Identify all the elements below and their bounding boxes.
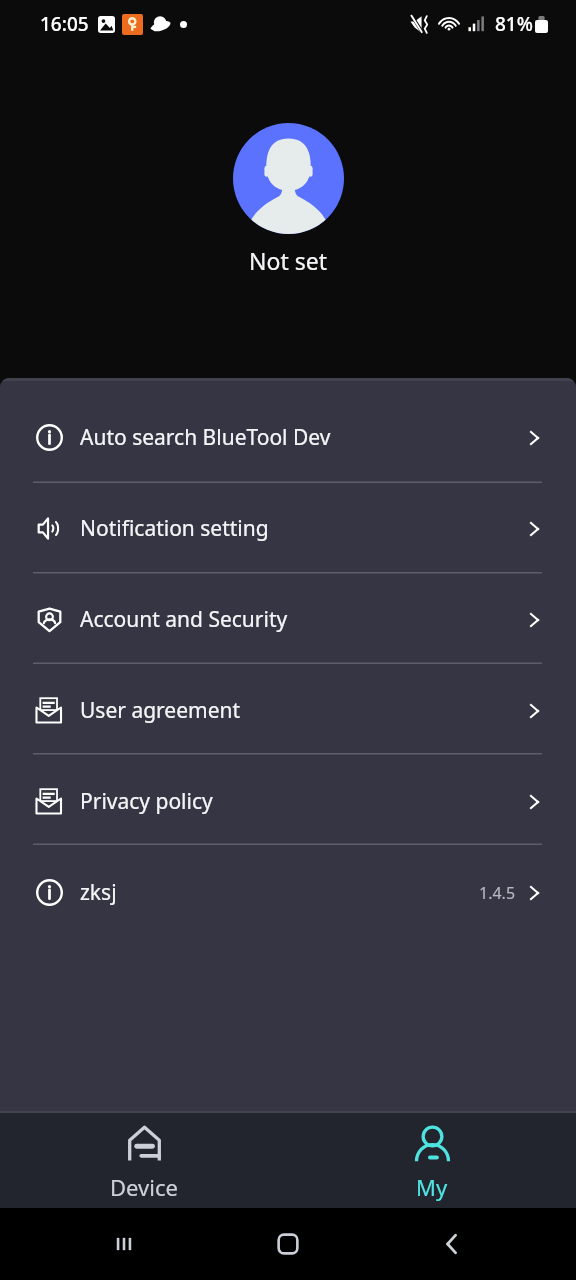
staticText: Auto search BlueTool Dev (80, 423, 331, 452)
other: Profile picture (233, 123, 344, 234)
staticText: User agreement (80, 696, 241, 725)
staticText: 16:05 (40, 11, 89, 37)
button[interactable]: Recents (42, 1208, 206, 1280)
button[interactable]: Profile picture (0, 123, 576, 276)
staticText: Privacy policy (80, 787, 213, 816)
button[interactable]: Back (370, 1208, 534, 1280)
button[interactable]: Auto search BlueTool Dev (0, 392, 576, 483)
button[interactable]: Privacy policy (0, 756, 576, 847)
button[interactable]: Home (206, 1208, 370, 1280)
staticText: Not set (249, 245, 327, 276)
staticText: Account and Security (80, 605, 288, 634)
button[interactable]: Notification setting (0, 483, 576, 574)
button[interactable]: User agreement (0, 665, 576, 756)
staticText: Device (110, 1172, 178, 1202)
staticText: Notification setting (80, 514, 269, 543)
staticText: 81% (495, 11, 533, 37)
button[interactable]: Device (0, 1113, 288, 1202)
staticText: 1.4.5 (479, 882, 516, 904)
staticText: My (416, 1172, 448, 1202)
button[interactable]: Account and Security (0, 574, 576, 665)
staticText: zksj (80, 878, 117, 907)
button[interactable]: zksj (0, 847, 576, 938)
button[interactable]: My (288, 1113, 576, 1202)
